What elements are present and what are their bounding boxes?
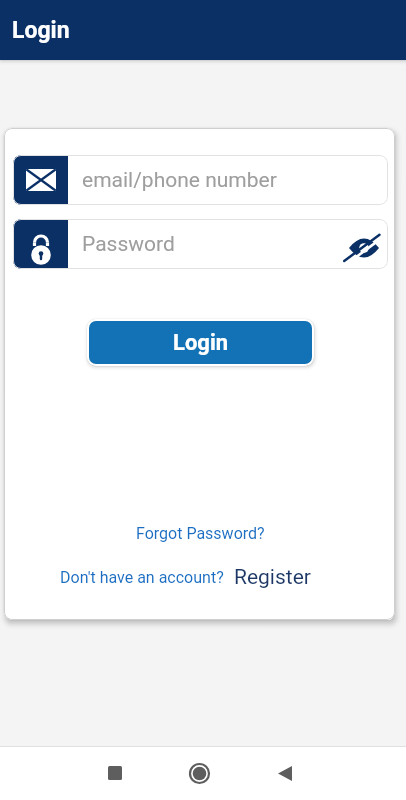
button[interactable] [179, 752, 220, 794]
staticText: Don't have an account? [60, 568, 224, 587]
staticText: email/phone number [82, 168, 277, 193]
button[interactable]: Login [89, 321, 312, 364]
staticText: Login [173, 330, 229, 356]
button[interactable]: Password [13, 219, 388, 269]
button[interactable] [344, 224, 384, 264]
button[interactable]: Don't have an account? [60, 565, 311, 590]
button[interactable] [264, 752, 305, 794]
staticText: Login [12, 17, 70, 44]
button[interactable] [94, 752, 135, 794]
staticText: Register [234, 565, 311, 590]
staticText: Password [82, 232, 175, 257]
button[interactable]: Forgot Password? [136, 524, 265, 543]
button[interactable]: email/phone number [13, 155, 388, 205]
